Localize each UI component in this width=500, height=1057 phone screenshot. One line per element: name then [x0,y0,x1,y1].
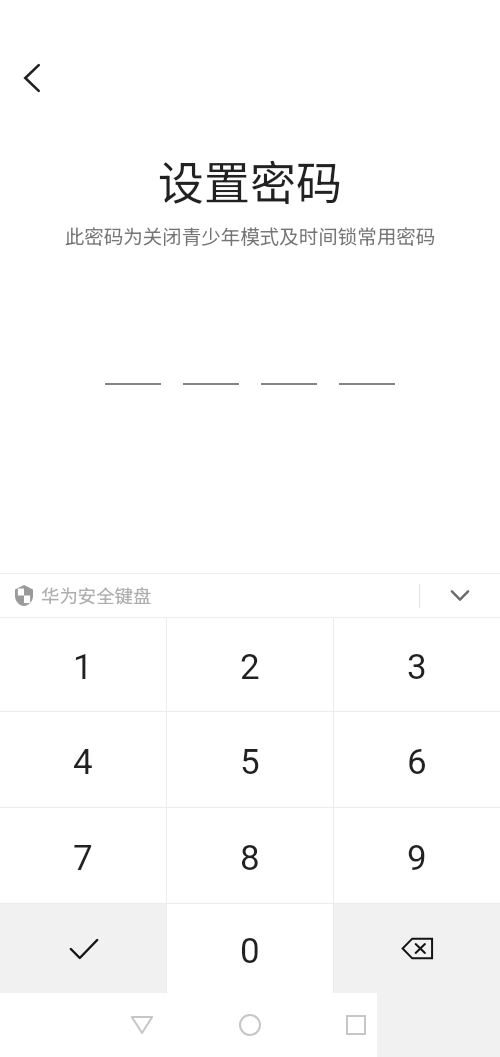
button[interactable]: Back [10,56,54,100]
button[interactable]: Home [228,1003,272,1047]
staticText: 华为安全键盘 [41,582,152,609]
button[interactable]: 1 [0,618,166,711]
staticText: 0 [240,931,260,972]
staticText: 4 [73,742,93,783]
button[interactable]: 0 [167,904,333,993]
staticText: 此密码为关闭青少年模式及时间锁常用密码 [0,221,500,249]
button[interactable]: 3 [334,618,500,711]
button[interactable]: Back [120,1003,164,1047]
button[interactable]: Delete [334,904,500,993]
button[interactable]: Hide keyboard [438,574,482,617]
staticText: 7 [73,838,93,879]
button[interactable]: Confirm [0,904,166,993]
staticText: 9 [407,838,427,879]
button[interactable]: 9 [334,808,500,903]
staticText: 设置密码 [0,147,500,214]
button[interactable]: 7 [0,808,166,903]
staticText: 5 [240,742,260,783]
staticText: 3 [407,647,427,688]
staticText: 6 [407,742,427,783]
staticText: 2 [240,647,260,688]
button[interactable]: 6 [334,712,500,807]
button[interactable]: 5 [167,712,333,807]
button[interactable]: Recent apps [334,1003,378,1047]
button[interactable]: 4 [0,712,166,807]
button[interactable]: 8 [167,808,333,903]
staticText: 1 [73,647,93,688]
staticText: 8 [240,838,260,879]
button[interactable]: 2 [167,618,333,711]
